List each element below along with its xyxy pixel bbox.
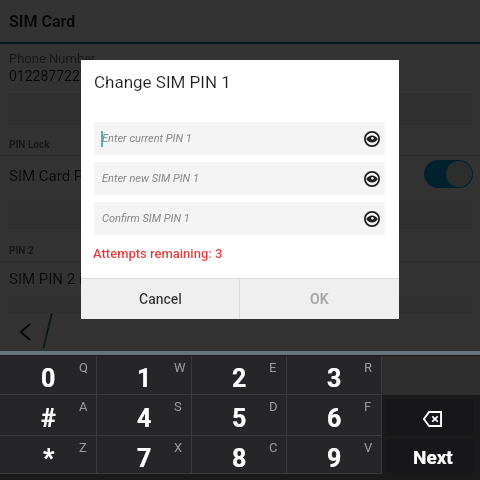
staticText: E bbox=[269, 360, 277, 375]
staticText: 5 bbox=[232, 404, 247, 433]
staticText: 0122877227 bbox=[9, 68, 88, 84]
button[interactable]: OK bbox=[240, 279, 399, 319]
staticText: 2 bbox=[232, 364, 247, 393]
staticText: 4 bbox=[137, 404, 152, 433]
staticText: PIN 2 bbox=[9, 245, 34, 257]
staticText: S bbox=[174, 399, 182, 414]
button[interactable]: Cancel bbox=[81, 279, 239, 319]
button[interactable]: 9 bbox=[287, 436, 382, 474]
staticText: Phone Number bbox=[9, 51, 96, 66]
staticText: Q bbox=[79, 360, 88, 375]
button[interactable]: 6 bbox=[287, 395, 382, 436]
button[interactable]: 7 bbox=[97, 436, 192, 474]
staticText: SIM Card PIN bbox=[9, 167, 99, 185]
button[interactable]: 8 bbox=[192, 436, 287, 474]
staticText: F bbox=[364, 399, 372, 414]
button[interactable]: SIM Card PIN toggle bbox=[424, 160, 473, 188]
staticText: 8 bbox=[232, 444, 247, 473]
staticText: A bbox=[79, 399, 88, 414]
button[interactable]: 0 bbox=[0, 356, 97, 395]
staticText: Next bbox=[413, 446, 453, 468]
staticText: Change SIM PIN 1 bbox=[94, 72, 231, 92]
staticText: Enter current PIN 1 bbox=[102, 132, 192, 145]
staticText: D bbox=[269, 399, 278, 414]
button[interactable]: Show PIN bbox=[361, 128, 383, 150]
staticText: Confirm SIM PIN 1 bbox=[102, 212, 190, 225]
button[interactable]: 5 bbox=[192, 395, 287, 436]
staticText: Enter new SIM PIN 1 bbox=[102, 172, 199, 185]
button[interactable]: Show PIN bbox=[361, 168, 383, 190]
button[interactable]: Back bbox=[8, 313, 44, 352]
staticText: Attempts remaining: 3 bbox=[93, 246, 223, 261]
button[interactable]: 2 bbox=[192, 356, 287, 395]
staticText: OK bbox=[310, 291, 329, 307]
staticText: 0 bbox=[41, 364, 56, 393]
staticText: R bbox=[364, 360, 373, 375]
button[interactable]: 4 bbox=[97, 395, 192, 436]
button[interactable]: * bbox=[0, 436, 97, 474]
staticText: SIM Card bbox=[9, 12, 76, 31]
staticText: 9 bbox=[327, 444, 342, 473]
staticText: 6 bbox=[327, 404, 342, 433]
button[interactable]: Show PIN bbox=[361, 208, 383, 230]
button[interactable]: Confirm SIM PIN 1 bbox=[94, 202, 385, 235]
staticText: V bbox=[364, 440, 373, 455]
staticText: Z bbox=[79, 440, 87, 455]
staticText: 1 bbox=[137, 364, 152, 393]
staticText: W bbox=[174, 360, 186, 375]
staticText: 7 bbox=[137, 444, 152, 473]
staticText: # bbox=[41, 404, 56, 433]
staticText: SIM PIN 2 is disabled bbox=[9, 270, 151, 288]
button[interactable]: 3 bbox=[287, 356, 382, 395]
button[interactable]: Backspace bbox=[387, 399, 473, 435]
staticText: X bbox=[174, 440, 183, 455]
button[interactable]: 1 bbox=[97, 356, 192, 395]
staticText: 3 bbox=[327, 364, 342, 393]
button[interactable]: Enter new SIM PIN 1 bbox=[94, 162, 385, 195]
staticText: C bbox=[269, 440, 278, 455]
button[interactable]: Next bbox=[387, 439, 474, 473]
staticText: * bbox=[43, 444, 55, 473]
button[interactable]: # bbox=[0, 395, 97, 436]
staticText: Cancel bbox=[139, 291, 182, 307]
button[interactable]: Enter current PIN 1 bbox=[94, 122, 385, 155]
staticText: PIN Lock bbox=[9, 139, 50, 151]
